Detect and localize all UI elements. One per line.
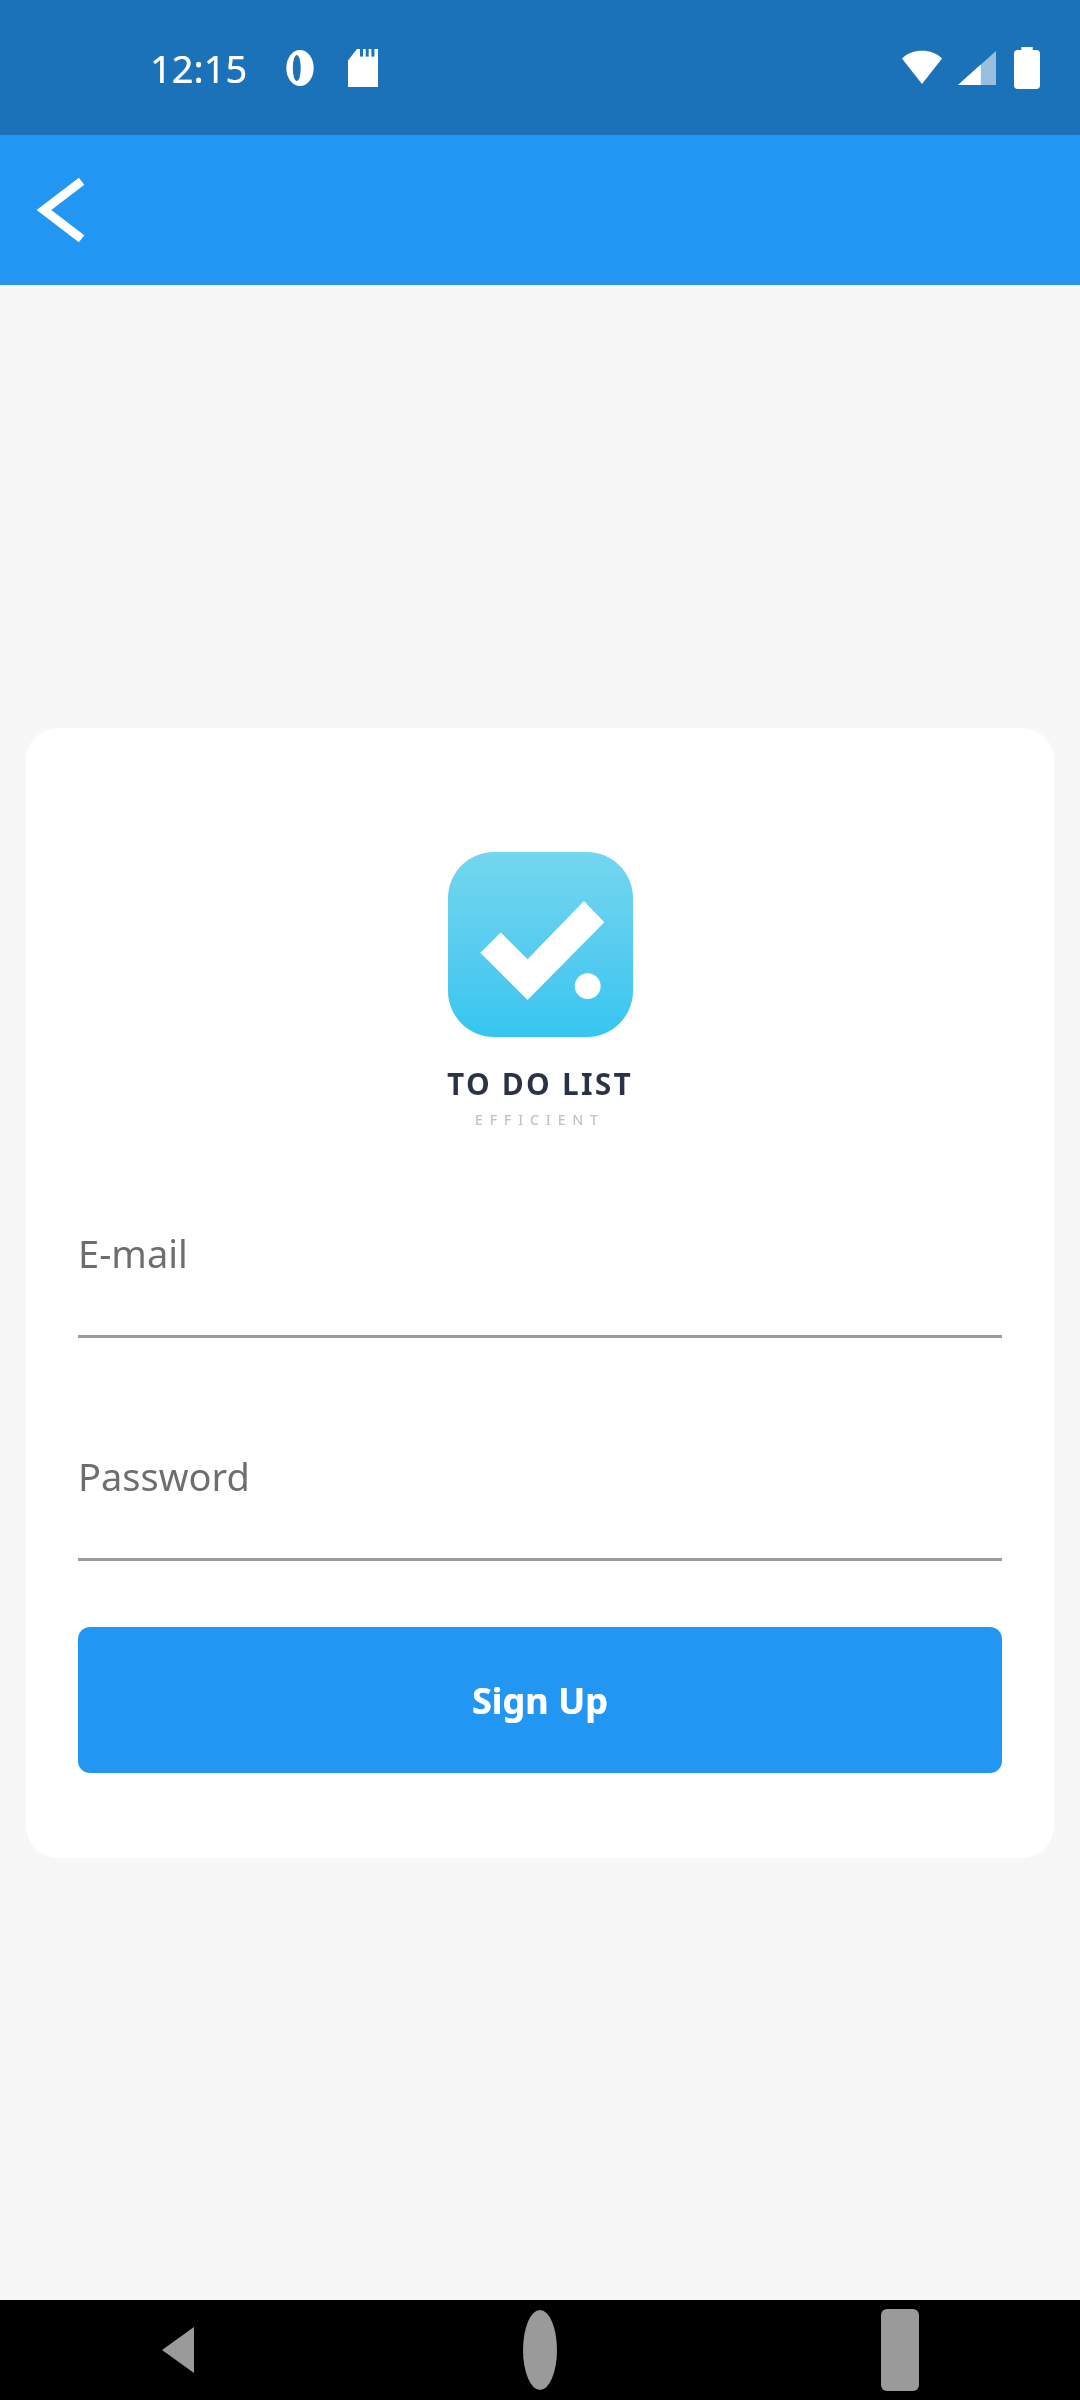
staticText: Password xyxy=(78,1450,250,1502)
button[interactable]: Back xyxy=(18,167,104,253)
staticText: Sign Up xyxy=(472,1676,609,1725)
staticText: 12:15 xyxy=(150,42,248,94)
staticText: E-mail xyxy=(78,1227,188,1279)
button[interactable]: Home xyxy=(360,2300,720,2400)
button[interactable]: Back xyxy=(0,2300,360,2400)
staticText: TO DO LIST xyxy=(447,1063,634,1104)
staticText: EFFICIENT xyxy=(475,1110,605,1129)
button[interactable]: Recent apps xyxy=(720,2300,1080,2400)
button[interactable]: Sign Up xyxy=(78,1627,1002,1773)
